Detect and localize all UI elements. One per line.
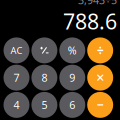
staticText: 8 bbox=[41, 71, 47, 85]
button[interactable]: 4 bbox=[3, 92, 29, 118]
staticText: 4 bbox=[13, 98, 19, 112]
button[interactable]: 5 bbox=[31, 92, 57, 118]
staticText: 788.6 bbox=[63, 7, 117, 35]
button[interactable]: 8 bbox=[31, 65, 57, 91]
button[interactable]: 7 bbox=[3, 65, 29, 91]
button[interactable]: % bbox=[59, 37, 85, 63]
staticText: 6 bbox=[69, 98, 75, 112]
button[interactable]: Multiply bbox=[87, 65, 113, 91]
button[interactable]: Divide bbox=[87, 37, 113, 63]
button[interactable]: Subtract bbox=[87, 92, 113, 118]
button[interactable]: AC bbox=[3, 37, 29, 63]
button[interactable]: Plus minus bbox=[31, 37, 57, 63]
staticText: % bbox=[68, 43, 77, 57]
button[interactable]: 6 bbox=[59, 92, 85, 118]
staticText: 5 bbox=[41, 98, 47, 112]
staticText: 7 bbox=[13, 71, 19, 85]
staticText: AC bbox=[10, 44, 22, 57]
staticText: 9 bbox=[69, 71, 75, 85]
button[interactable]: 9 bbox=[59, 65, 85, 91]
staticText: 3,943÷5 bbox=[78, 0, 117, 7]
